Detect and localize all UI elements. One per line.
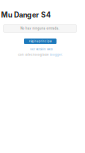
staticText: Ver versión web: [30, 48, 53, 51]
button[interactable]: Blogger: [50, 53, 62, 56]
staticText: No hay ninguna entrada.: [20, 27, 59, 30]
staticText: Página principal: [29, 40, 52, 43]
button[interactable]: Ver versión web: [29, 47, 53, 51]
button[interactable]: Página principal: [24, 38, 56, 44]
staticText: Con la tecnología de: [18, 53, 50, 56]
staticText: Mu Danger S4: [1, 11, 51, 19]
staticText: .: [62, 53, 63, 56]
staticText: Blogger: [50, 53, 62, 56]
